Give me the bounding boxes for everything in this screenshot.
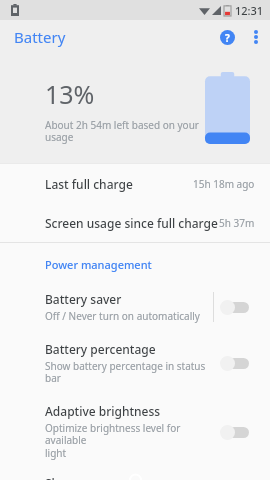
staticText: 15h 18m ago — [193, 177, 255, 191]
staticText: About 2h 54m left based on your usage — [45, 118, 199, 144]
button[interactable]: Battery percentage — [0, 332, 270, 394]
staticText: Show battery percentage in status bar — [45, 359, 214, 385]
button[interactable]: Battery saver — [0, 282, 270, 332]
button[interactable]: Screen usage since full charge — [0, 203, 270, 242]
staticText: Adaptive brightness — [45, 403, 161, 419]
staticText: Last full charge — [45, 176, 193, 192]
staticText: 12:31 — [235, 3, 264, 18]
button[interactable]: Battery saver — [214, 292, 258, 322]
staticText: 13% — [45, 77, 95, 111]
button[interactable]: Adaptive brightness — [214, 417, 258, 447]
staticText: ? — [225, 31, 230, 45]
staticText: Battery percentage — [45, 341, 156, 357]
staticText: Power management — [45, 257, 152, 272]
button[interactable]: Battery percentage — [214, 348, 258, 378]
staticText: Battery saver — [45, 291, 122, 307]
staticText: Sleep — [45, 475, 77, 480]
button[interactable]: Adaptive brightness — [0, 394, 270, 469]
staticText: Optimize brightness level for available … — [45, 421, 214, 460]
staticText: Screen usage since full charge — [45, 215, 219, 231]
staticText: Off / Never turn on automatically — [45, 309, 200, 323]
staticText: 5h 37m — [219, 216, 255, 230]
button[interactable]: Last full charge — [0, 164, 270, 203]
button[interactable]: More options — [242, 23, 270, 51]
staticText: Battery — [14, 27, 66, 47]
button[interactable]: Help — [212, 22, 242, 52]
